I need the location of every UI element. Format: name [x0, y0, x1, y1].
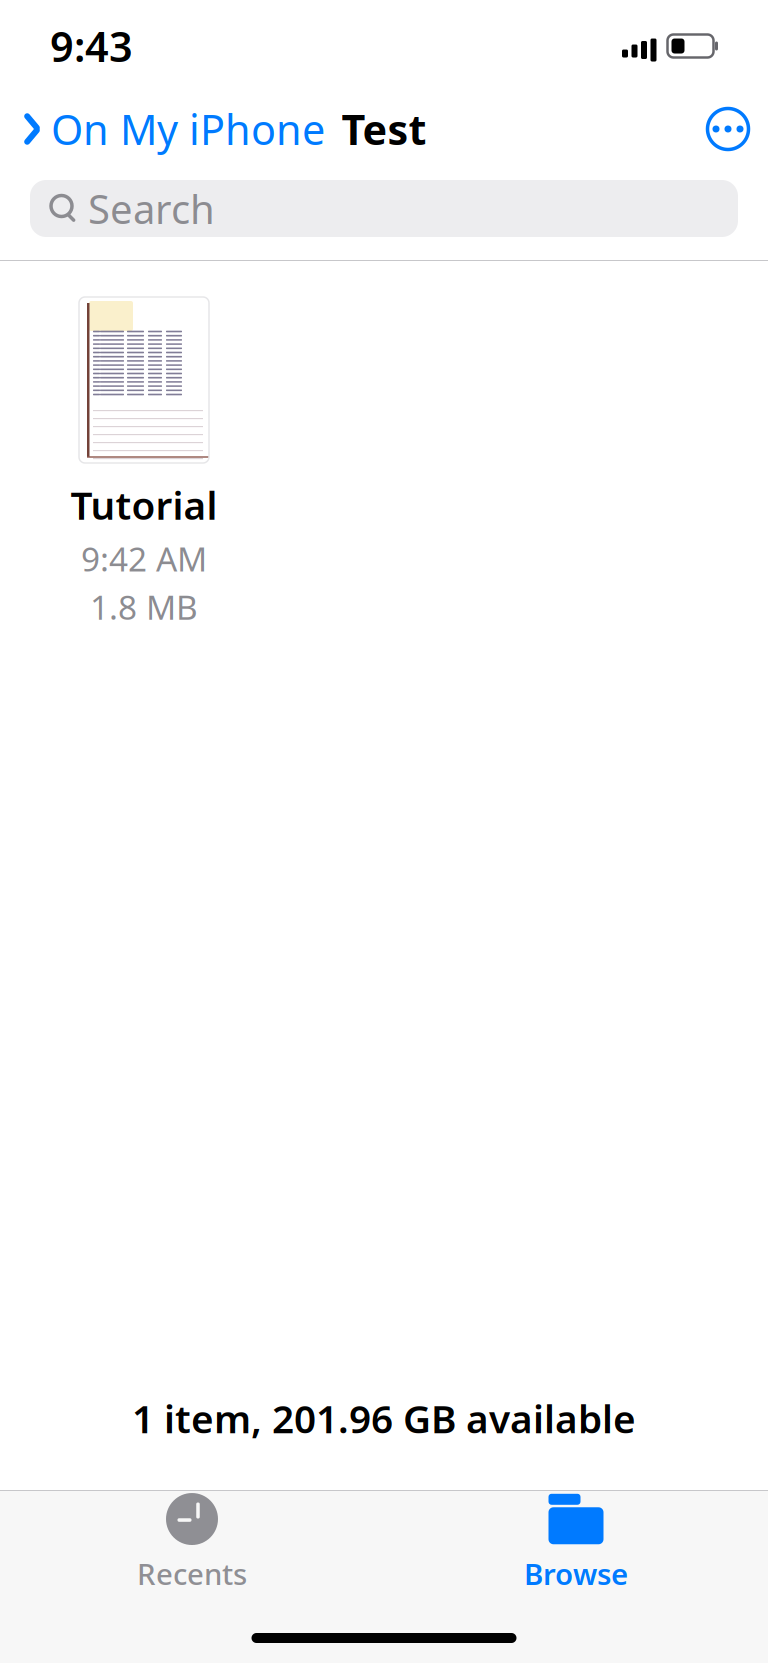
staticText: 9:42 AM — [81, 536, 207, 581]
button[interactable]: Tutorial — [36, 297, 252, 629]
staticText: 1 item, 201.96 GB available — [132, 1393, 636, 1444]
button[interactable]: Recents — [0, 1493, 384, 1593]
staticText: Browse — [524, 1554, 628, 1593]
staticText: Search — [88, 182, 215, 235]
staticText: 9:43 — [50, 19, 133, 73]
button[interactable]: On My iPhone — [18, 92, 329, 166]
button[interactable]: Search — [30, 180, 738, 237]
staticText: Recents — [137, 1554, 247, 1593]
button[interactable]: Browse — [384, 1493, 768, 1593]
staticText: Tutorial — [70, 479, 217, 530]
button[interactable]: More — [698, 99, 758, 159]
staticText: Test — [341, 102, 426, 156]
staticText: 1.8 MB — [90, 585, 198, 629]
staticText: On My iPhone — [51, 102, 325, 156]
